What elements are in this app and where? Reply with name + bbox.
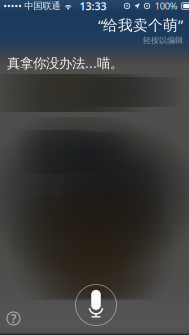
staticText: 中国联通 <box>24 0 60 12</box>
staticText: ? <box>11 310 16 326</box>
button[interactable]: 轻按以编辑 <box>143 35 183 45</box>
staticText: 轻按以编辑 <box>143 35 183 45</box>
staticText: 100% <box>155 0 178 12</box>
staticText: 真拿你没办法...喵。 <box>7 54 123 72</box>
staticText: 13:33 <box>79 0 106 13</box>
button[interactable]: Help <box>7 312 20 325</box>
staticText: “给我卖个萌” <box>98 15 183 34</box>
button[interactable]: Microphone <box>74 283 118 327</box>
